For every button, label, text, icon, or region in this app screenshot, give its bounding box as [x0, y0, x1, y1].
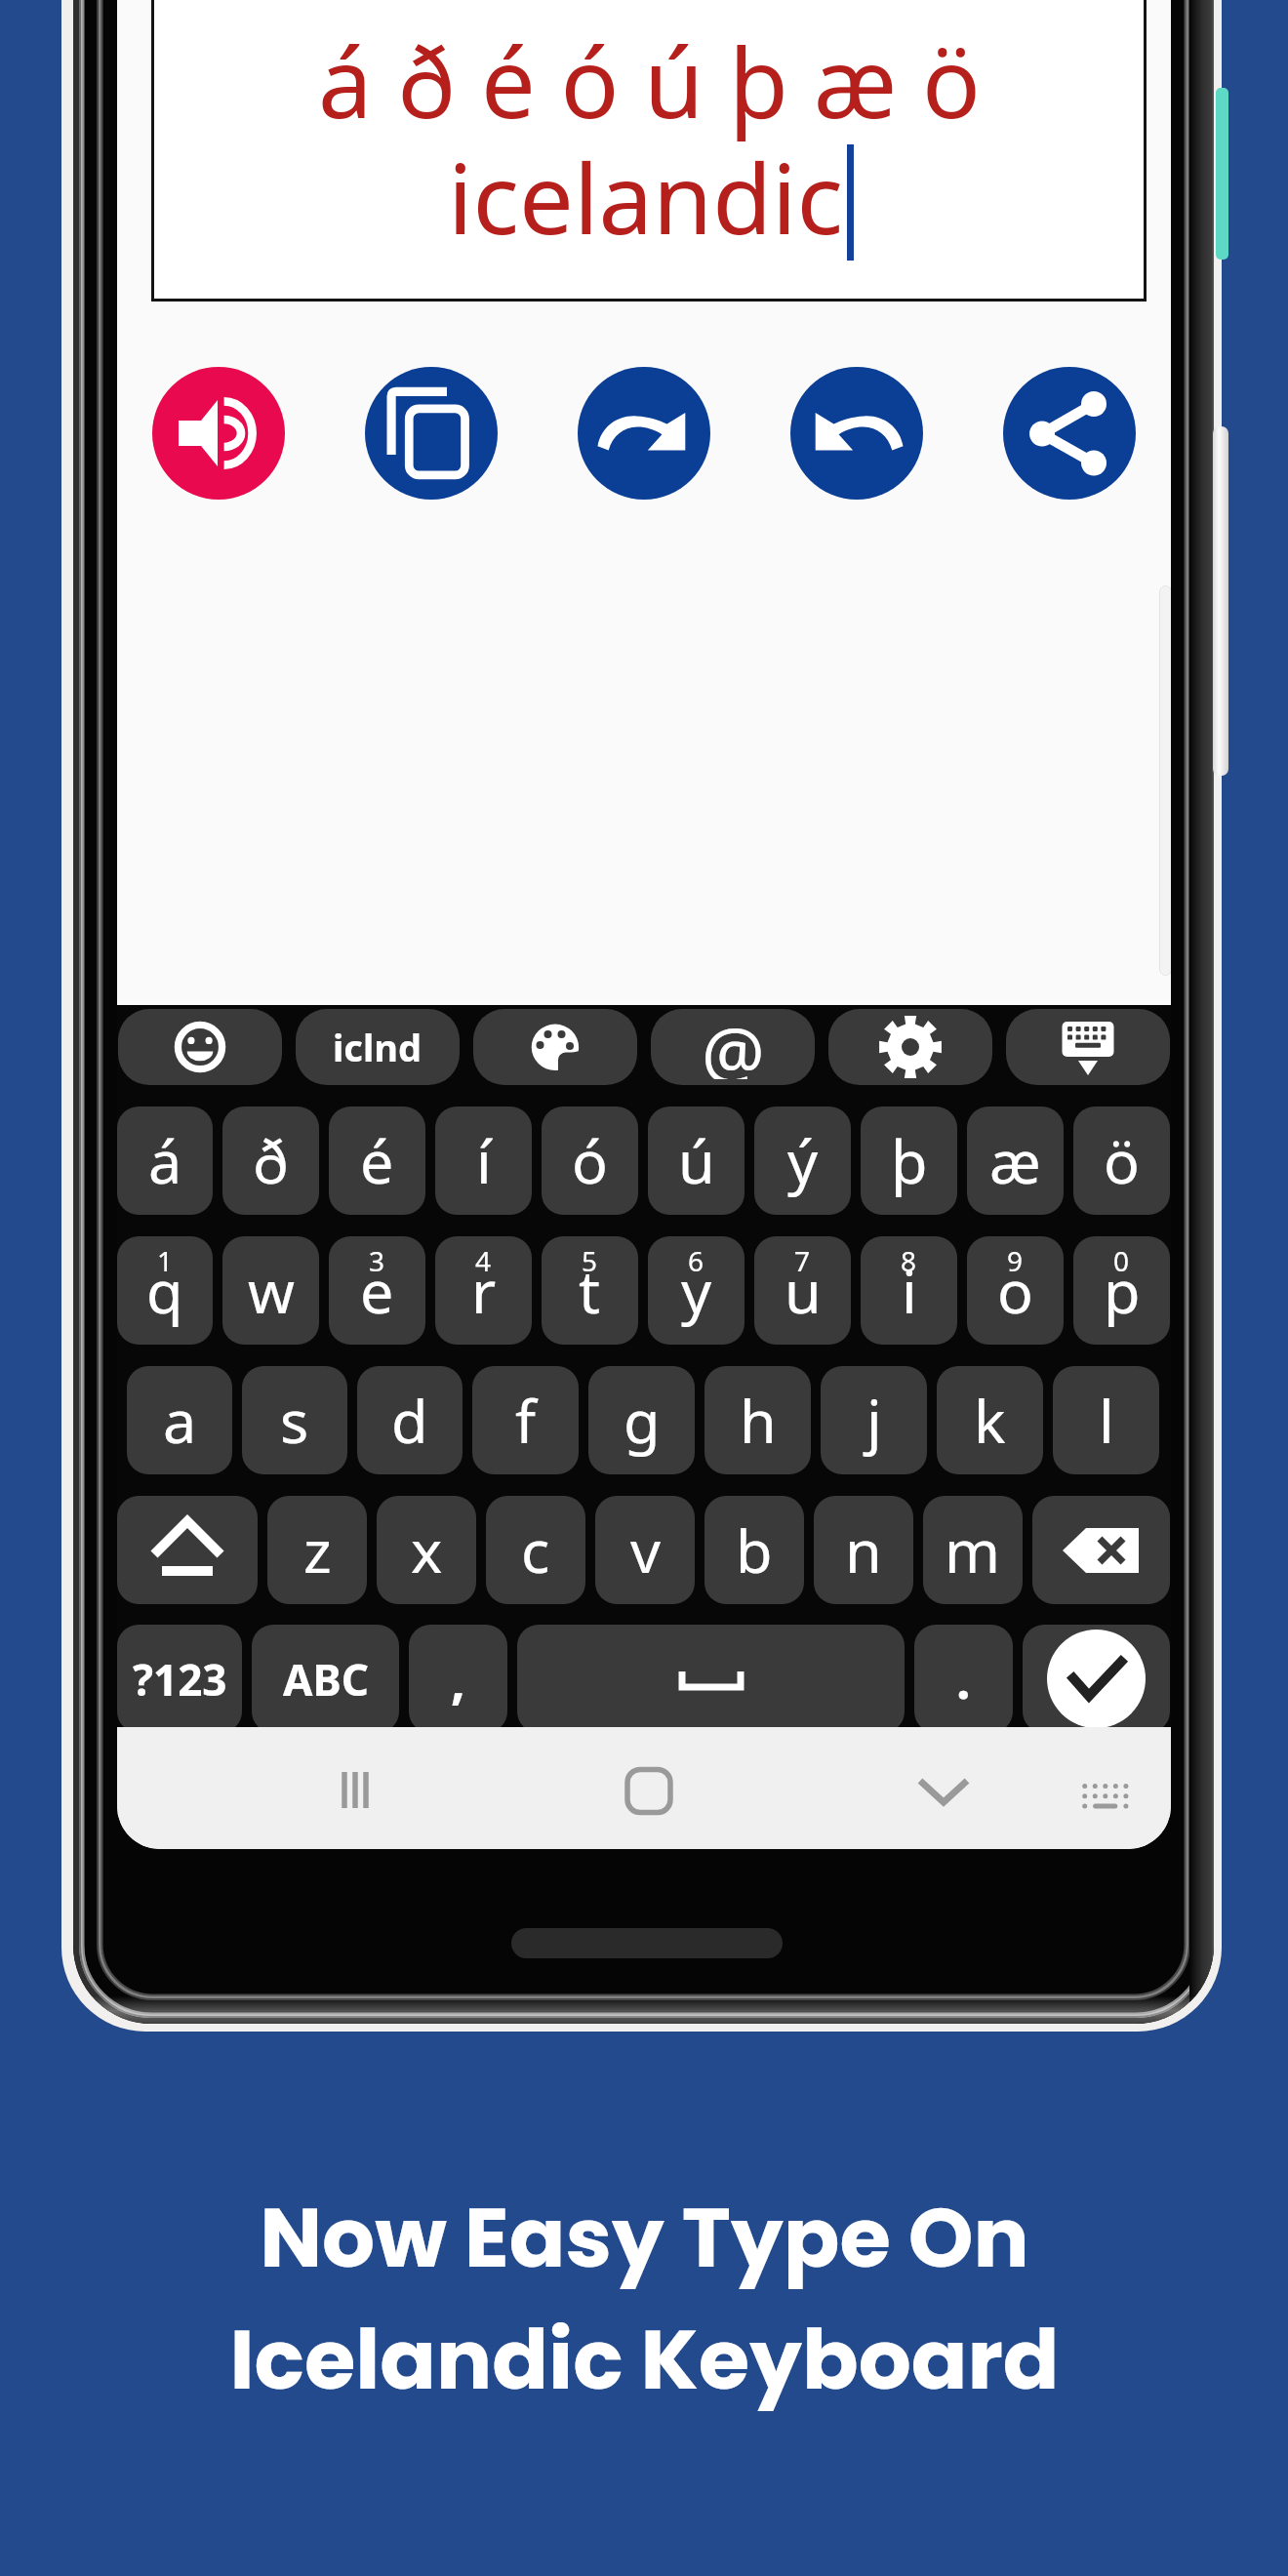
button[interactable]: Change keyboard — [1052, 1727, 1159, 1849]
button[interactable]: m — [923, 1496, 1023, 1604]
button[interactable]: Space — [517, 1625, 905, 1733]
button[interactable]: æ — [967, 1107, 1064, 1215]
button[interactable]: Recents — [302, 1727, 409, 1849]
staticText: p — [1104, 1250, 1141, 1331]
button[interactable]: p — [1073, 1236, 1170, 1345]
button[interactable]: iclnd — [296, 1009, 460, 1085]
staticText: 6 — [688, 1242, 704, 1279]
button[interactable]: d — [357, 1366, 463, 1474]
button[interactable]: n — [814, 1496, 913, 1604]
button[interactable]: Speak — [152, 367, 285, 500]
button[interactable]: Emoji — [118, 1009, 282, 1085]
staticText: k — [974, 1380, 1006, 1461]
button[interactable]: y — [648, 1236, 745, 1345]
staticText: q — [146, 1250, 183, 1331]
staticText: 1 — [157, 1242, 174, 1279]
button[interactable]: Shift — [117, 1496, 258, 1604]
button[interactable]: . — [914, 1625, 1013, 1733]
staticText: ö — [1104, 1120, 1140, 1201]
staticText: i — [902, 1250, 917, 1331]
button[interactable]: u — [754, 1236, 851, 1345]
button[interactable]: g — [588, 1366, 695, 1474]
staticText: m — [945, 1509, 1001, 1590]
staticText: ý — [787, 1120, 819, 1201]
staticText: b — [736, 1509, 773, 1590]
button[interactable]: Backspace — [1032, 1496, 1170, 1604]
button[interactable]: Copy — [365, 367, 498, 500]
button[interactable]: Text input field — [151, 0, 1147, 302]
button[interactable]: Settings — [828, 1009, 992, 1085]
staticText: æ — [989, 1120, 1041, 1201]
button[interactable]: k — [937, 1366, 1043, 1474]
staticText: , — [451, 1644, 465, 1713]
button[interactable]: Hide keyboard — [1006, 1009, 1170, 1085]
button[interactable]: þ — [861, 1107, 957, 1215]
button[interactable]: b — [704, 1496, 804, 1604]
button[interactable]: j — [821, 1366, 927, 1474]
button[interactable]: Redo — [578, 367, 710, 500]
staticText: í — [476, 1120, 492, 1201]
staticText: o — [997, 1250, 1033, 1331]
staticText: f — [515, 1380, 536, 1461]
staticText: . — [956, 1644, 971, 1713]
staticText: ð — [253, 1120, 289, 1201]
button[interactable]: ?123 — [117, 1625, 242, 1733]
button[interactable]: f — [472, 1366, 579, 1474]
button[interactable]: s — [242, 1366, 347, 1474]
button[interactable]: c — [486, 1496, 585, 1604]
button[interactable]: v — [595, 1496, 695, 1604]
staticText: c — [521, 1509, 550, 1590]
button[interactable]: Share — [1003, 367, 1136, 500]
button[interactable]: , — [409, 1625, 507, 1733]
button[interactable]: @ — [651, 1009, 815, 1085]
staticText: d — [391, 1380, 428, 1461]
staticText: ABC — [283, 1650, 369, 1709]
staticText: x — [411, 1509, 443, 1590]
staticText: icelandic — [448, 131, 844, 262]
staticText: h — [740, 1380, 777, 1461]
button[interactable]: Hide keyboard — [890, 1727, 997, 1849]
button[interactable]: ó — [542, 1107, 638, 1215]
button[interactable]: Home — [595, 1727, 703, 1849]
staticText: þ — [891, 1120, 928, 1201]
button[interactable]: r — [435, 1236, 532, 1345]
staticText: g — [624, 1380, 661, 1461]
staticText: é — [360, 1120, 394, 1201]
button[interactable]: ö — [1073, 1107, 1170, 1215]
staticText: Now Easy Type On — [260, 2180, 1029, 2296]
button[interactable]: h — [704, 1366, 811, 1474]
button[interactable]: ú — [648, 1107, 745, 1215]
button[interactable]: e — [329, 1236, 425, 1345]
button[interactable]: q — [117, 1236, 213, 1345]
button[interactable]: í — [435, 1107, 532, 1215]
staticText: t — [579, 1250, 601, 1331]
staticText: y — [681, 1250, 712, 1331]
button[interactable]: l — [1053, 1366, 1159, 1474]
staticText: s — [280, 1380, 309, 1461]
staticText: ú — [678, 1120, 715, 1201]
button[interactable]: é — [329, 1107, 425, 1215]
staticText: @ — [702, 1009, 765, 1079]
staticText: z — [303, 1509, 332, 1590]
button[interactable]: Undo — [790, 367, 923, 500]
staticText: l — [1099, 1380, 1114, 1461]
button[interactable]: a — [127, 1366, 232, 1474]
button[interactable]: z — [267, 1496, 367, 1604]
staticText: 9 — [1007, 1242, 1024, 1279]
staticText: 7 — [794, 1242, 811, 1279]
button[interactable]: Theme — [473, 1009, 637, 1085]
staticText: 0 — [1113, 1242, 1130, 1279]
staticText: v — [630, 1509, 661, 1590]
button[interactable]: w — [222, 1236, 319, 1345]
staticText: 8 — [901, 1242, 917, 1279]
button[interactable]: Enter — [1023, 1625, 1170, 1733]
button[interactable]: o — [967, 1236, 1064, 1345]
button[interactable]: á — [117, 1107, 213, 1215]
button[interactable]: ý — [754, 1107, 851, 1215]
button[interactable]: i — [861, 1236, 957, 1345]
button[interactable]: ð — [222, 1107, 319, 1215]
button[interactable]: x — [377, 1496, 476, 1604]
button[interactable]: t — [542, 1236, 638, 1345]
button[interactable]: ABC — [252, 1625, 399, 1733]
staticText: iclnd — [333, 1022, 423, 1072]
